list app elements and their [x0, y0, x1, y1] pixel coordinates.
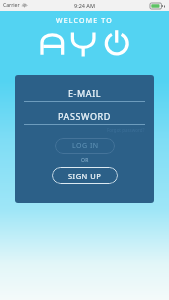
staticText: E-MAIL — [68, 87, 102, 99]
staticText: PASSWORD — [58, 110, 111, 122]
button[interactable]: E-MAIL — [24, 87, 145, 102]
staticText: OR — [81, 157, 89, 164]
staticText: Carrier — [3, 2, 20, 9]
staticText: LOG IN — [72, 141, 99, 151]
staticText: 9:24 AM — [74, 2, 96, 9]
staticText: WELCOME TO — [0, 16, 169, 26]
button[interactable]: LOG IN — [55, 138, 115, 154]
other: AYO logo — [39, 30, 131, 56]
staticText: SIGN UP — [68, 171, 102, 181]
button[interactable]: PASSWORD — [24, 110, 145, 125]
button[interactable]: SIGN UP — [52, 167, 118, 184]
staticText: Forgot password? — [107, 127, 145, 133]
